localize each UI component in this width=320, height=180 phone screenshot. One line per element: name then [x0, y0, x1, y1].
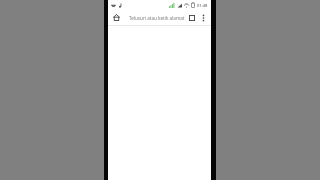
button[interactable]: Switch tabs: [185, 11, 198, 24]
button[interactable]: Telusuri atau ketik alamat web: [125, 12, 185, 24]
staticText: Telusuri atau ketik alamat web: [129, 15, 185, 21]
button[interactable]: Home: [110, 11, 123, 24]
button[interactable]: More options: [198, 12, 209, 23]
staticText: 01:48: [197, 3, 208, 8]
